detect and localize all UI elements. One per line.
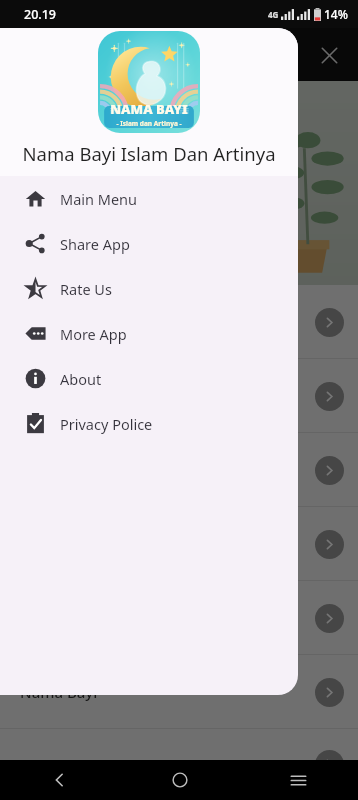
button[interactable]: Nama Bayi — [0, 729, 358, 800]
button[interactable]: Close — [308, 34, 350, 76]
button[interactable]: Nama Bayi — [0, 359, 358, 433]
button[interactable]: Nama Bayi — [0, 581, 358, 655]
staticText: Main Menu — [60, 189, 138, 209]
button[interactable]: About — [0, 356, 298, 401]
button[interactable]: Nama Bayi — [0, 655, 358, 729]
staticText: NAMA BAYI ISLAM — [22, 146, 241, 177]
button[interactable]: Rate Us — [0, 266, 298, 311]
staticText: Privacy Police — [60, 414, 153, 434]
button[interactable]: More App — [0, 311, 298, 356]
button[interactable]: Main Menu — [0, 176, 298, 221]
staticText: Nama Bayi Islam Dan Artinya — [22, 141, 276, 166]
button[interactable]: Share App — [0, 221, 298, 266]
button[interactable]: Nama Bayi — [0, 285, 358, 359]
staticText: Share App — [60, 234, 130, 254]
staticText: 14% — [324, 6, 348, 22]
button[interactable]: Nama Bayi — [0, 507, 358, 581]
button[interactable]: Recent apps — [239, 760, 358, 800]
staticText: Dan Artinya — [22, 177, 152, 206]
staticText: NAMA BAYI — [110, 100, 188, 118]
staticText: Nama Bayi — [20, 682, 98, 702]
button[interactable]: Privacy Police — [0, 401, 298, 446]
staticText: Rate Us — [60, 279, 112, 299]
staticText: 20.19 — [24, 6, 57, 23]
staticText: About — [60, 369, 102, 389]
staticText: Nama Bayi — [20, 386, 98, 406]
staticText: 4G — [268, 9, 279, 20]
staticText: More App — [60, 324, 127, 344]
staticText: lengkap & terbaru — [22, 206, 123, 221]
button[interactable]: Nama Bayi — [0, 433, 358, 507]
button[interactable]: Home — [120, 760, 239, 800]
button[interactable]: Back — [0, 760, 120, 800]
staticText: Nama Bayi — [20, 312, 98, 332]
staticText: - Islam dan Artinya - — [116, 119, 182, 128]
staticText: Nama Bayi — [20, 755, 98, 775]
